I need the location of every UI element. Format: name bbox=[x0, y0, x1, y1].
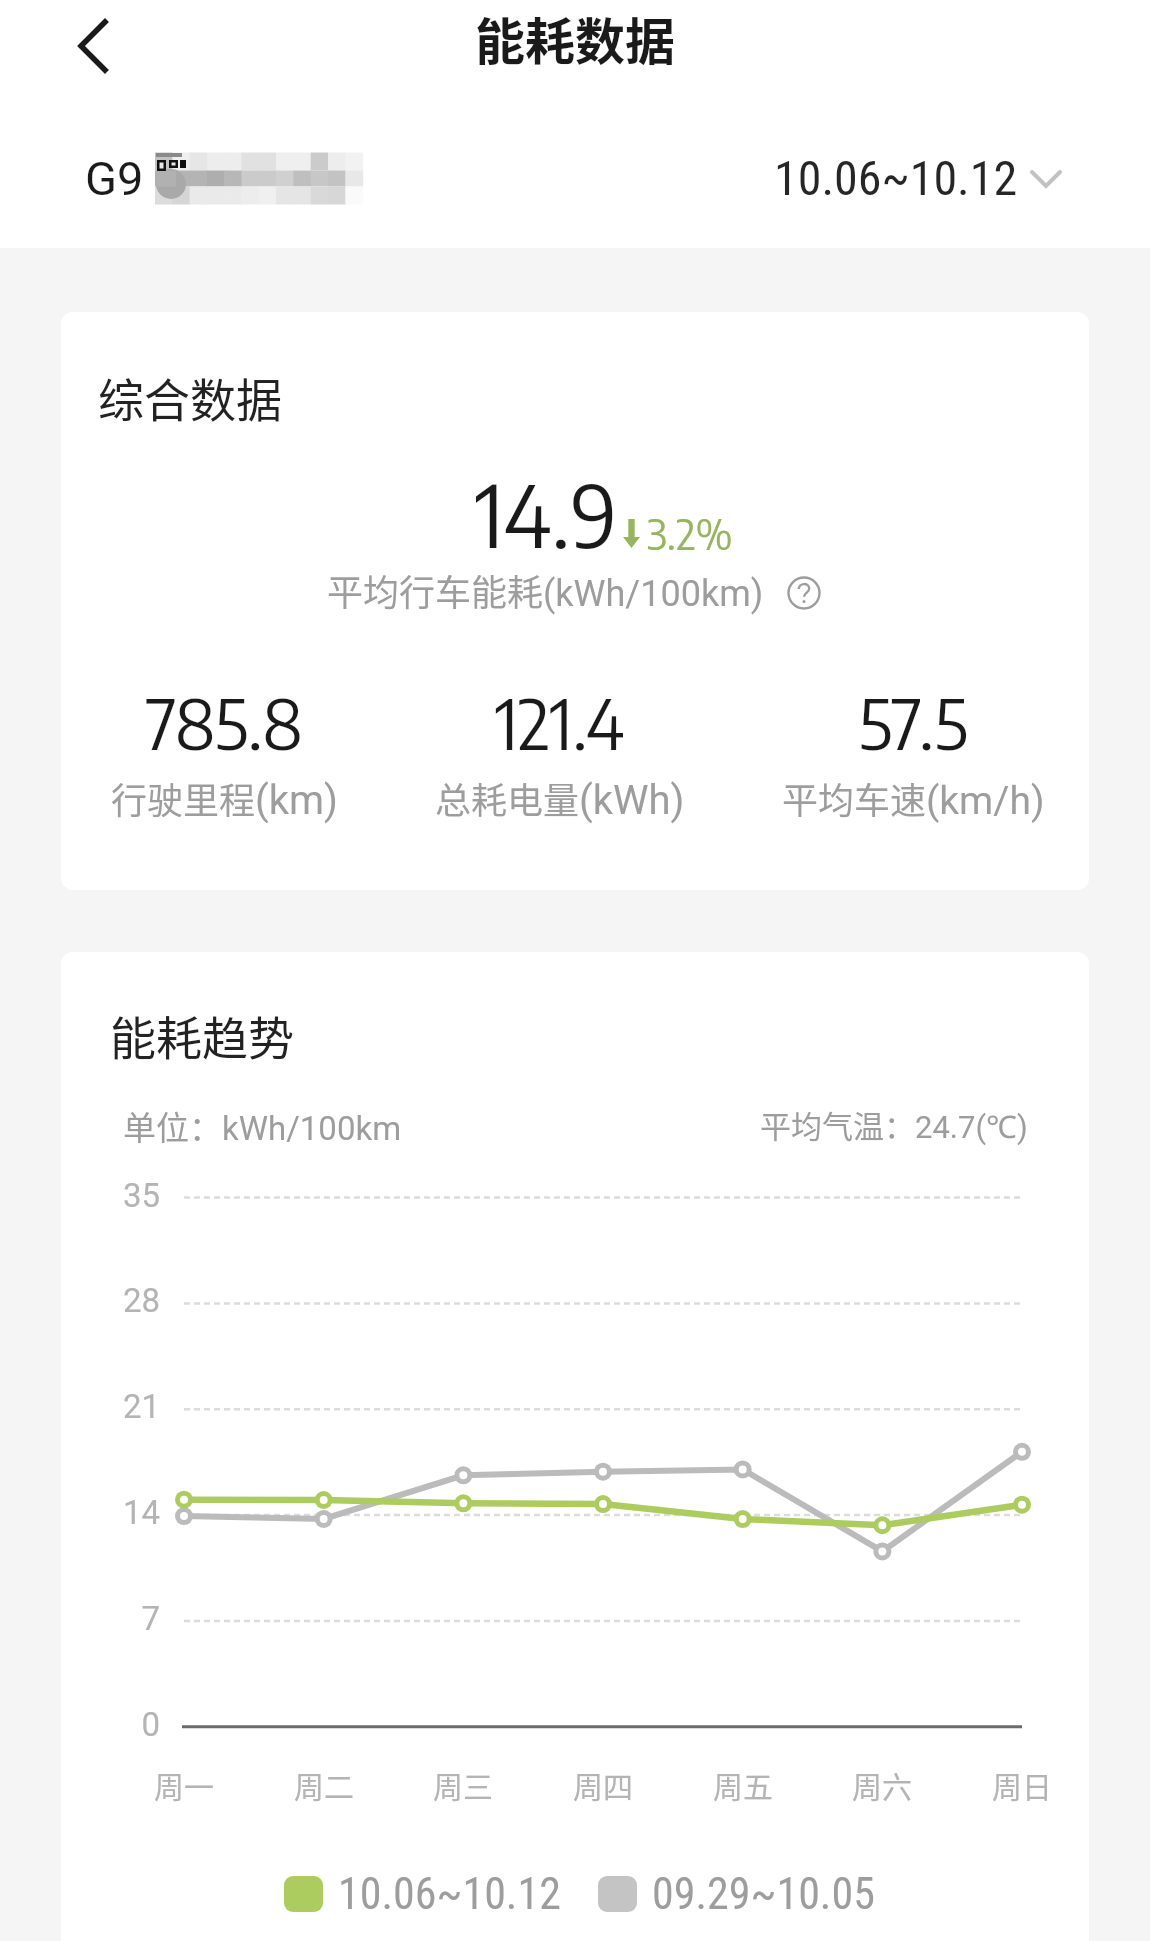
staticText: 周二 bbox=[264, 1763, 384, 1806]
staticText: 0 bbox=[61, 1705, 160, 1744]
button[interactable]: Help bbox=[783, 572, 825, 614]
staticText: 周一 bbox=[124, 1763, 244, 1806]
staticText: 周六 bbox=[822, 1763, 942, 1806]
staticText: 10.06~10.12 bbox=[774, 150, 1018, 206]
staticText: G9 bbox=[85, 151, 144, 206]
staticText: 10.06~10.12 bbox=[338, 1868, 561, 1920]
button[interactable]: Back bbox=[42, 0, 146, 92]
staticText: 周三 bbox=[403, 1763, 523, 1806]
button[interactable]: 121.4 bbox=[435, 679, 685, 824]
staticText: 09.29~10.05 bbox=[652, 1868, 875, 1920]
staticText: 平均气温：24.7(℃) bbox=[760, 1102, 1028, 1147]
staticText: 121.4 bbox=[495, 679, 625, 765]
staticText: 3.2% bbox=[647, 507, 733, 559]
button[interactable]: 10.06~10.12 bbox=[774, 150, 1062, 206]
button[interactable]: 785.8 bbox=[111, 679, 338, 824]
staticText: 行驶里程(km) bbox=[111, 772, 338, 824]
staticText: 总耗电量(kWh) bbox=[435, 772, 685, 824]
staticText: 28 bbox=[61, 1281, 160, 1320]
button[interactable]: 57.5 bbox=[782, 679, 1045, 824]
staticText: 14.9 bbox=[475, 459, 618, 566]
staticText: 7 bbox=[61, 1599, 160, 1638]
staticText: 平均车速(km/h) bbox=[782, 772, 1045, 824]
staticText: 能耗数据 bbox=[475, 2, 675, 74]
staticText: 21 bbox=[61, 1387, 160, 1426]
staticText: 785.8 bbox=[146, 679, 303, 765]
staticText: 57.5 bbox=[859, 679, 968, 765]
staticText: 14 bbox=[61, 1493, 160, 1532]
staticText: 35 bbox=[61, 1176, 160, 1215]
staticText: 周五 bbox=[683, 1763, 803, 1806]
staticText: 单位：kWh/100km bbox=[123, 1102, 402, 1150]
staticText: 综合数据 bbox=[98, 364, 282, 431]
staticText: 周四 bbox=[543, 1763, 663, 1806]
staticText: 能耗趋势 bbox=[110, 1002, 294, 1069]
staticText: 平均行车能耗(kWh/100km) bbox=[327, 564, 764, 616]
staticText: 周日 bbox=[962, 1763, 1082, 1806]
